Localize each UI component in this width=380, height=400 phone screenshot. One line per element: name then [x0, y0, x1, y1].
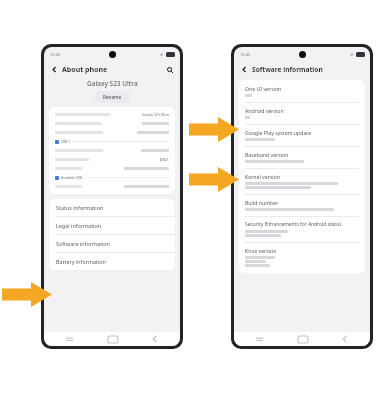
staticText: Google Play system update — [245, 129, 312, 136]
button[interactable]: Android version — [239, 103, 365, 124]
staticText: About phone — [62, 65, 108, 75]
button[interactable]: Software information — [49, 235, 175, 252]
staticText: Status information — [56, 204, 104, 211]
staticText: Android version — [245, 107, 284, 114]
button[interactable]: Baseband version — [239, 147, 365, 168]
button[interactable]: Status information — [49, 199, 175, 216]
button[interactable]: Battery information — [49, 253, 175, 270]
button[interactable]: Security Enhancements for Android status — [239, 217, 365, 242]
staticText: Available SIM — [61, 175, 83, 180]
button[interactable]: Rename — [94, 91, 131, 103]
staticText: Rename — [103, 94, 122, 100]
staticText: 10:45 — [240, 52, 251, 57]
button[interactable]: Google Play system update — [239, 125, 365, 146]
button[interactable]: Legal information — [49, 217, 175, 234]
staticText: ıll — [350, 52, 354, 57]
button[interactable]: Back — [49, 64, 60, 75]
staticText: Build number — [245, 199, 279, 206]
staticText: Baseband version — [245, 151, 289, 158]
button[interactable]: Search — [164, 64, 175, 75]
staticText: Galaxy S23 Ultra — [87, 79, 138, 88]
staticText: Security Enhancements for Android status — [245, 221, 342, 228]
staticText: Software information — [252, 65, 323, 74]
staticText: SIM 1 — [61, 139, 70, 144]
button[interactable]: Back — [239, 64, 250, 75]
button[interactable]: One UI version — [239, 81, 365, 102]
staticText: Battery information — [56, 258, 106, 265]
staticText: One UI version — [245, 85, 282, 92]
staticText: Kernel version — [245, 173, 280, 180]
staticText: 10:45 — [50, 52, 61, 57]
staticText: Legal information — [56, 222, 102, 229]
staticText: AT&T — [160, 157, 169, 162]
staticText: Software information — [56, 240, 110, 247]
staticText: ıll — [160, 52, 164, 57]
button[interactable]: Kernel version — [239, 169, 365, 194]
button[interactable]: Build number — [239, 195, 365, 216]
staticText: Knox version — [245, 247, 277, 254]
staticText: Galaxy S23 Ultra — [142, 112, 169, 117]
button[interactable]: Knox version — [239, 243, 365, 272]
